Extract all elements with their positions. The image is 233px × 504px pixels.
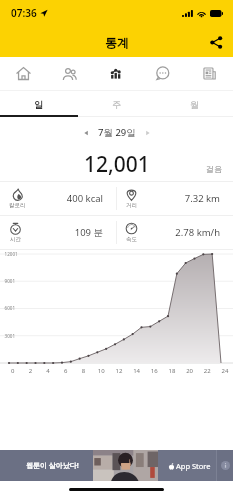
- staticText: 칼로리: [9, 202, 26, 209]
- staticText: 7월 29일: [98, 126, 136, 139]
- button[interactable]: Friends: [46, 57, 92, 90]
- button[interactable]: 주: [77, 91, 155, 117]
- button[interactable]: 월: [155, 91, 233, 117]
- button[interactable]: Statistics: [92, 57, 139, 90]
- staticText: 7.32 km: [138, 192, 220, 205]
- staticText: 걸음: [206, 164, 222, 174]
- staticText: 2.78 km/h: [138, 226, 220, 239]
- button[interactable]: 웹툰이 살아났다!: [0, 450, 233, 481]
- button[interactable]: 일: [0, 91, 77, 117]
- staticText: App Store: [176, 461, 211, 471]
- staticText: 거리: [126, 202, 137, 209]
- staticText: 월: [190, 99, 199, 110]
- staticText: 통계: [105, 35, 129, 50]
- staticText: 속도: [126, 236, 137, 243]
- staticText: 웹툰이 살아났다!: [26, 461, 79, 471]
- button[interactable]: Home: [0, 57, 46, 90]
- button[interactable]: Next day: [139, 124, 157, 142]
- button[interactable]: Chat: [139, 57, 186, 90]
- button[interactable]: Share: [205, 31, 227, 53]
- staticText: 400 kcal: [26, 192, 103, 205]
- staticText: 일: [34, 99, 43, 110]
- button[interactable]: Previous day: [77, 124, 95, 142]
- button[interactable]: News: [186, 57, 233, 90]
- staticText: 109 분: [22, 226, 103, 239]
- staticText: 07:36: [11, 6, 37, 20]
- staticText: 주: [112, 99, 121, 110]
- staticText: 12,001: [84, 150, 150, 179]
- staticText: 시간: [10, 236, 21, 243]
